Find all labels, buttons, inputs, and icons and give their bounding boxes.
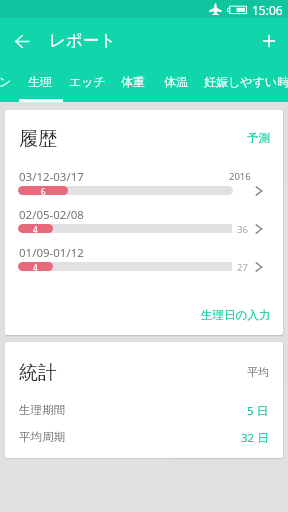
button[interactable]: 生理: [16, 63, 64, 99]
staticText: 平均: [247, 365, 269, 379]
button[interactable]: エッチ: [63, 63, 111, 99]
staticText: 生理日の入力: [201, 308, 271, 322]
button[interactable]: 予測: [241, 126, 276, 150]
button[interactable]: 体重: [109, 63, 157, 99]
button[interactable]: 03/12-03/17: [5, 168, 283, 206]
button[interactable]: ン: [0, 63, 19, 99]
button[interactable]: 体温: [152, 63, 200, 99]
button[interactable]: 生理日の入力: [195, 303, 277, 327]
staticText: 4: [33, 224, 38, 233]
staticText: 予測: [247, 131, 270, 145]
staticText: エッチ: [69, 74, 106, 89]
staticText: 妊娠しやすい時期: [204, 74, 288, 89]
staticText: ン: [0, 74, 12, 89]
staticText: 27: [237, 261, 248, 274]
staticText: 03/12-03/17: [19, 169, 84, 185]
button[interactable]: Back: [8, 27, 36, 55]
staticText: 履歴: [19, 127, 57, 151]
button[interactable]: Add: [255, 27, 283, 55]
button[interactable]: 02/05-02/08: [5, 206, 283, 244]
button[interactable]: 01/09-01/12: [5, 244, 283, 282]
staticText: 15:06: [252, 2, 283, 18]
staticText: 統計: [19, 361, 57, 385]
staticText: 36: [237, 223, 248, 236]
staticText: レポート: [49, 30, 117, 51]
staticText: 体温: [164, 74, 188, 89]
button[interactable]: 平均周期: [5, 429, 283, 455]
staticText: 平均周期: [19, 430, 65, 444]
staticText: 体重: [121, 74, 145, 89]
staticText: 02/05-02/08: [19, 207, 84, 223]
staticText: 4: [33, 262, 38, 271]
button[interactable]: 妊娠しやすい時期: [204, 63, 288, 99]
staticText: 2016: [229, 170, 251, 183]
staticText: 生理期間: [19, 403, 65, 417]
button[interactable]: 生理期間: [5, 402, 283, 428]
staticText: 32 日: [241, 430, 269, 446]
staticText: 01/09-01/12: [19, 245, 84, 261]
staticText: 生理: [28, 74, 52, 89]
staticText: 5 日: [247, 403, 269, 419]
staticText: 6: [41, 186, 46, 195]
